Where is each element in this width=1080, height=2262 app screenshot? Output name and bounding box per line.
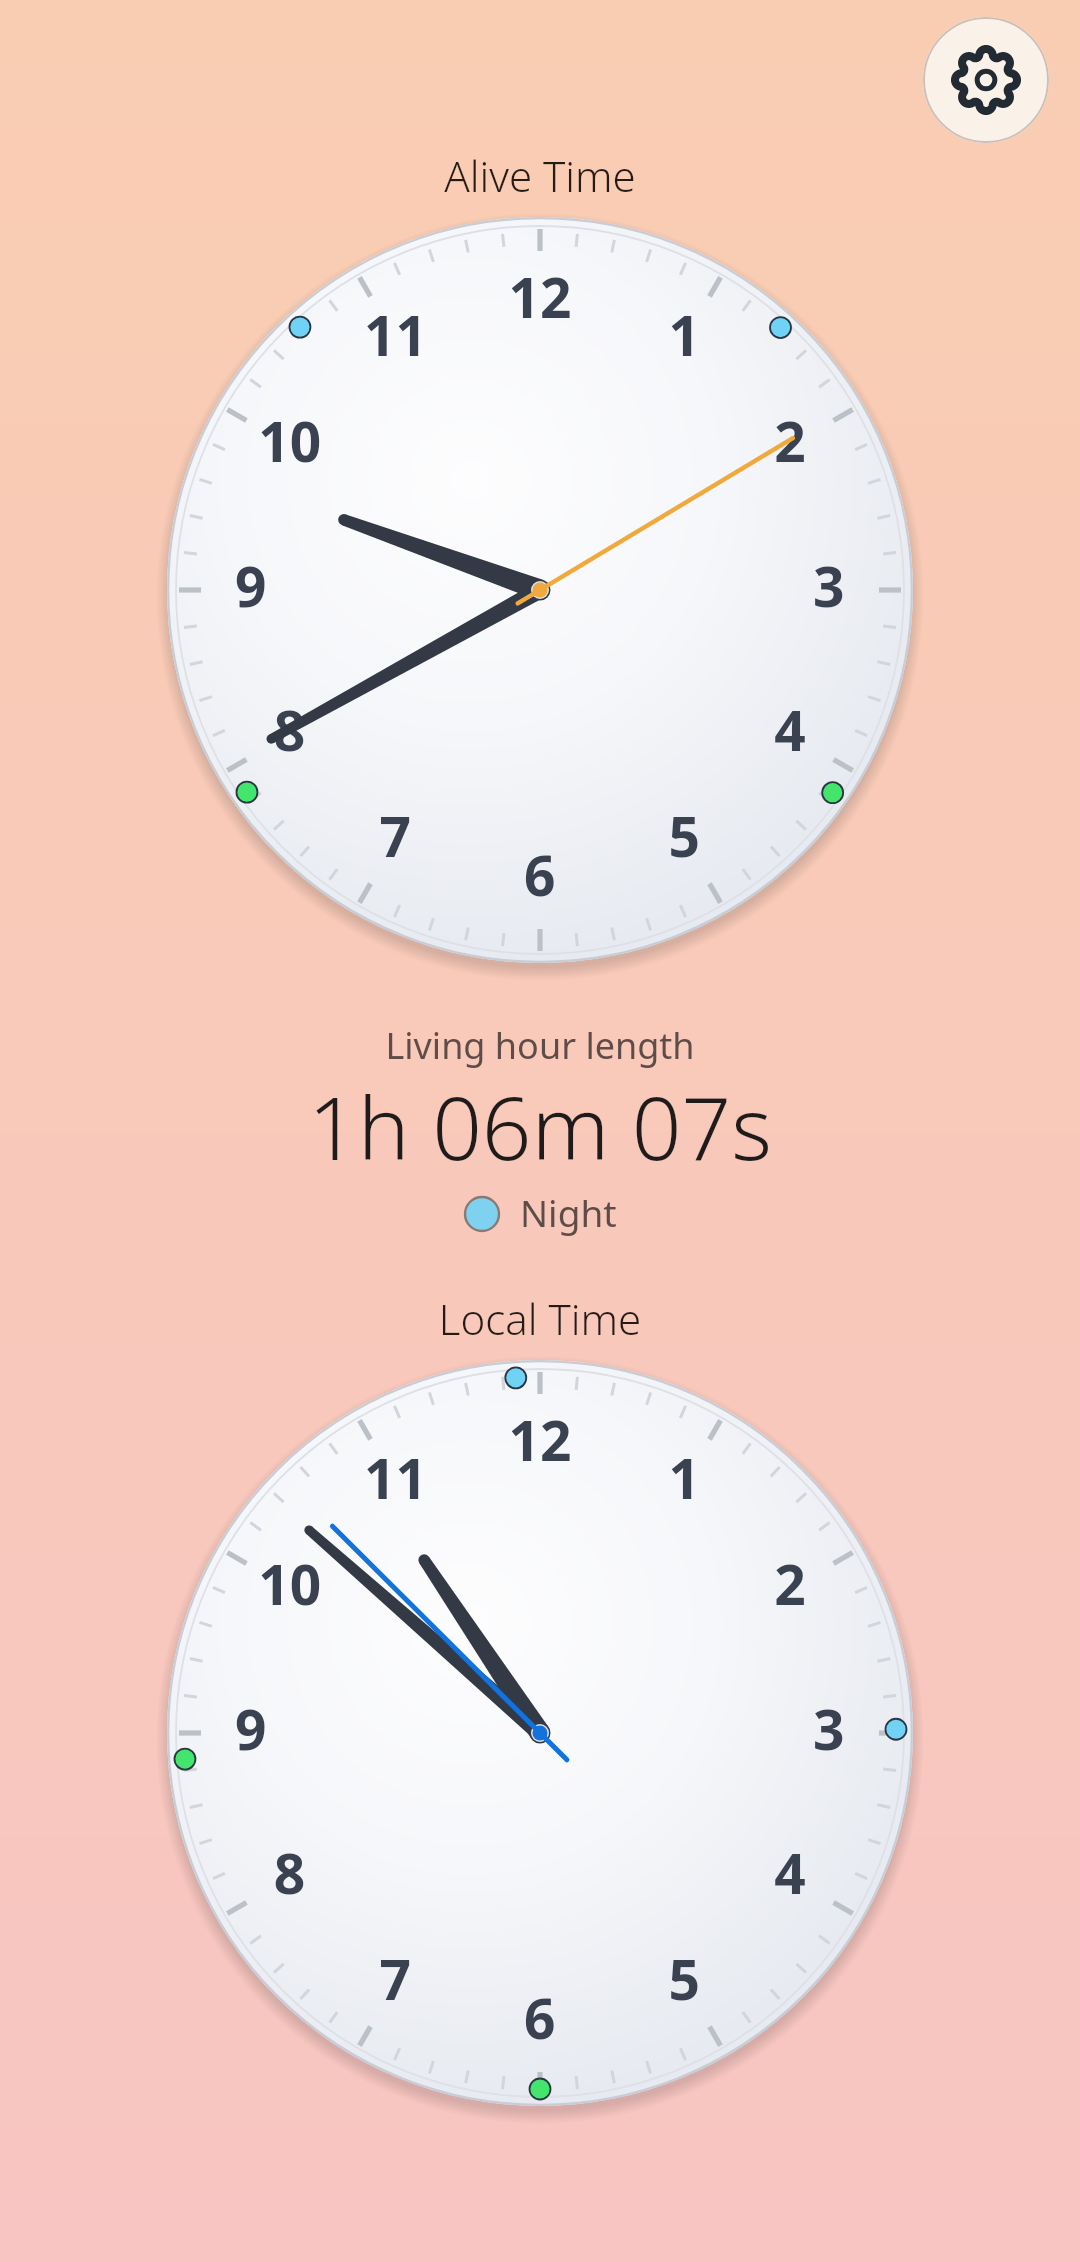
button[interactable]: Settings	[923, 17, 1049, 143]
staticText: Local Time	[0, 1290, 1080, 2262]
staticText: 1h 06m 07s	[0, 1067, 1080, 2262]
staticText: Night	[520, 1187, 617, 1237]
staticText: Living hour length	[0, 1021, 1080, 2262]
staticText: Alive Time	[0, 147, 1080, 2262]
